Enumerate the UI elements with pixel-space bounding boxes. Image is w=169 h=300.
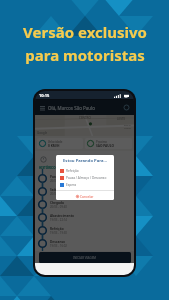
- button[interactable]: Refeição: [35, 224, 134, 237]
- staticText: Parada Pátio: [50, 175, 71, 179]
- staticText: Estou Parando Para...: [56, 158, 114, 164]
- staticText: Descanso: [50, 240, 66, 244]
- staticText: 19/03 - 22:14: [50, 218, 67, 222]
- staticText: 20/03 - 11:05: [50, 192, 67, 196]
- staticText: HISTÓRICO DE PARADAS: [39, 166, 75, 170]
- staticText: Olá, Marcos São Paulo: [48, 105, 95, 111]
- staticText: Versão exclusivo: [23, 22, 147, 42]
- button[interactable]: Notificações: [123, 104, 130, 111]
- staticText: ZONA LESTE: [124, 123, 131, 129]
- button[interactable]: Proximo: [87, 138, 130, 149]
- staticText: 20/03 - 14:22: [50, 179, 67, 183]
- staticText: Abastecimento: [50, 214, 75, 218]
- staticText: 10:15: [39, 93, 50, 98]
- staticText: INICIAR VIAGEM: [73, 256, 97, 260]
- staticText: 19/03 - 19:30: [50, 231, 67, 235]
- staticText: 0 KM/H: [48, 144, 60, 148]
- staticText: Refeição: [66, 169, 79, 173]
- staticText: Cancelar: [80, 194, 94, 198]
- staticText: para motoristas: [25, 45, 145, 65]
- button[interactable]: Menu: [39, 104, 46, 111]
- button[interactable]: Refeição: [60, 167, 114, 174]
- staticText: Saída Cliente: [50, 188, 71, 192]
- staticText: Velocidade: [48, 140, 63, 144]
- button[interactable]: Velocidade: [39, 138, 81, 149]
- button[interactable]: Chegada: [35, 198, 134, 211]
- button[interactable]: Saída Cliente: [35, 185, 134, 198]
- staticText: Google: [37, 131, 48, 135]
- staticText: SÃO PAULO: [96, 144, 114, 148]
- button[interactable]: Espera: [60, 181, 114, 188]
- staticText: Refeição: [50, 227, 64, 231]
- staticText: CENTRO: [79, 116, 91, 120]
- staticText: Pausa / Almoço / Descanso: [66, 176, 107, 180]
- staticText: Espera: [66, 183, 77, 187]
- staticText: LESTE: [117, 117, 126, 121]
- staticText: Proximo: [96, 140, 107, 144]
- staticText: 20/03 - 09:40: [50, 205, 67, 209]
- button[interactable]: Cancelar: [56, 191, 114, 200]
- button[interactable]: Parada Pátio: [35, 172, 134, 185]
- button[interactable]: INICIAR VIAGEM: [39, 252, 131, 263]
- button[interactable]: Abastecimento: [35, 211, 134, 224]
- staticText: Chegada: [50, 201, 64, 205]
- button[interactable]: Pausa / Almoço / Descanso: [60, 174, 114, 181]
- button[interactable]: Descanso: [35, 237, 134, 250]
- staticText: 19/03 - 16:02: [50, 244, 67, 248]
